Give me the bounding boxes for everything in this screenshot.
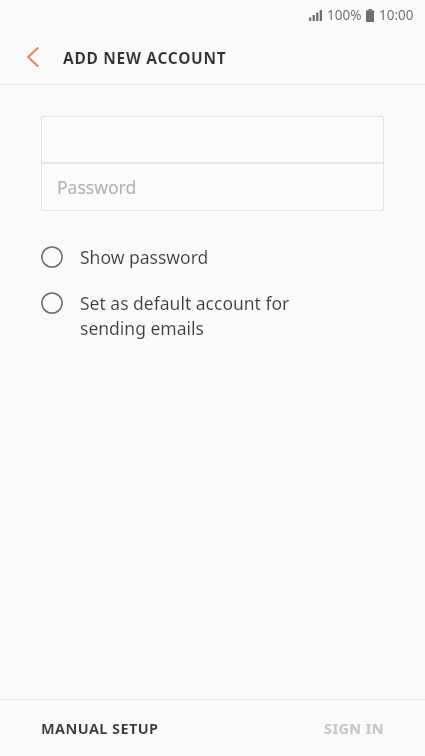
button[interactable]: SIGN IN bbox=[283, 700, 425, 756]
staticText: Set as default account for sending email… bbox=[80, 291, 290, 340]
staticText: 100% bbox=[327, 6, 362, 24]
staticText: MANUAL SETUP bbox=[41, 718, 159, 738]
button[interactable]: Back bbox=[13, 37, 53, 77]
staticText: SIGN IN bbox=[324, 718, 384, 738]
button[interactable]: Password bbox=[41, 163, 384, 211]
staticText: Password bbox=[57, 175, 137, 199]
staticText: ADD NEW ACCOUNT bbox=[63, 47, 227, 68]
staticText: Show password bbox=[80, 245, 209, 269]
button[interactable]: Show password bbox=[0, 234, 425, 280]
button[interactable]: Set as default account for sending email… bbox=[0, 280, 425, 342]
staticText: 10:00 bbox=[379, 6, 414, 24]
button[interactable]: MANUAL SETUP bbox=[0, 700, 200, 756]
button[interactable] bbox=[41, 116, 384, 163]
